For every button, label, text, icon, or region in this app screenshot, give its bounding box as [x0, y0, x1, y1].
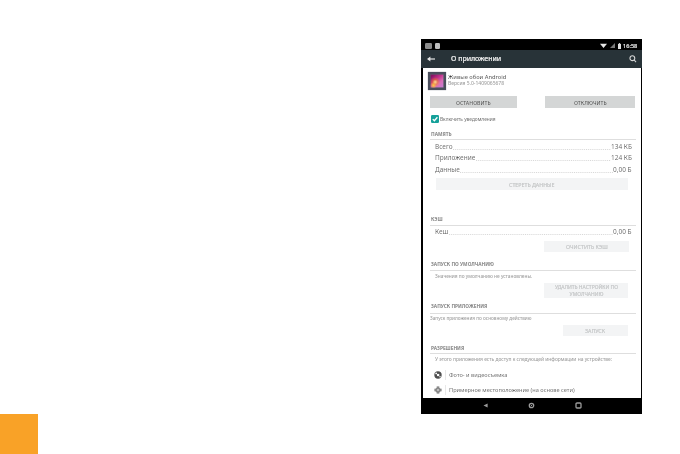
button[interactable]: ОТКЛЮЧИТЬ — [545, 96, 635, 108]
button[interactable]: Back — [478, 398, 492, 412]
staticText: ОТКЛЮЧИТЬ — [574, 99, 607, 106]
staticText: О приложении — [451, 54, 502, 64]
staticText: УДАЛИТЬ НАСТРОЙКИ ПО УМОЛЧАНИЮ — [555, 284, 618, 297]
staticText: РАЗРЕШЕНИЯ — [431, 345, 465, 352]
staticText: 0,00 Б — [613, 165, 632, 174]
staticText: 0,00 Б — [613, 227, 632, 236]
staticText: Всего — [435, 142, 453, 151]
button[interactable]: ОЧИСТИТЬ КЭШ — [544, 241, 629, 252]
staticText: Версия 5.0-1409065678 — [448, 80, 505, 87]
staticText: ЗАПУСК — [585, 327, 606, 334]
button[interactable]: Home — [524, 398, 538, 412]
button[interactable]: Back — [421, 50, 441, 68]
button[interactable]: Recents — [571, 398, 585, 412]
staticText: Включить уведомления — [440, 116, 496, 123]
button[interactable]: ОСТАНОВИТЬ — [430, 96, 517, 108]
staticText: ОСТАНОВИТЬ — [456, 99, 491, 106]
button[interactable]: Фото- и видеосъемка — [423, 368, 641, 382]
staticText: Данные — [435, 165, 460, 174]
staticText: 134 КБ — [611, 142, 632, 151]
staticText: Приложение — [435, 153, 476, 162]
staticText: 16:58 — [623, 42, 638, 50]
staticText: У этого приложения есть доступ к следующ… — [435, 356, 613, 363]
staticText: Живые обои Android — [448, 73, 507, 81]
staticText: ЗАПУСК ПРИЛОЖЕНИЯ — [431, 303, 488, 310]
staticText: ПАМЯТЬ — [431, 131, 452, 138]
staticText: Запуск приложения по основному действию — [430, 315, 532, 321]
staticText: КЭШ — [431, 216, 443, 223]
button[interactable]: УДАЛИТЬ НАСТРОЙКИ ПО УМОЛЧАНИЮ — [544, 283, 628, 298]
button[interactable]: Примерное местоположение (на основе сети… — [423, 383, 641, 397]
staticText: ОЧИСТИТЬ КЭШ — [566, 243, 608, 250]
staticText: ЗАПУСК ПО УМОЛЧАНИЮ — [431, 261, 494, 268]
staticText: 124 КБ — [611, 153, 632, 162]
staticText: Значения по умолчанию не установлены. — [435, 273, 533, 280]
button[interactable]: СТЕРЕТЬ ДАННЫЕ — [436, 178, 628, 190]
staticText: Кеш — [435, 227, 449, 236]
staticText: Примерное местоположение (на основе сети… — [449, 386, 575, 394]
button[interactable]: ЗАПУСК — [563, 325, 628, 336]
staticText: СТЕРЕТЬ ДАННЫЕ — [509, 181, 555, 188]
button[interactable]: Search — [623, 50, 642, 68]
staticText: Фото- и видеосъемка — [449, 371, 508, 379]
